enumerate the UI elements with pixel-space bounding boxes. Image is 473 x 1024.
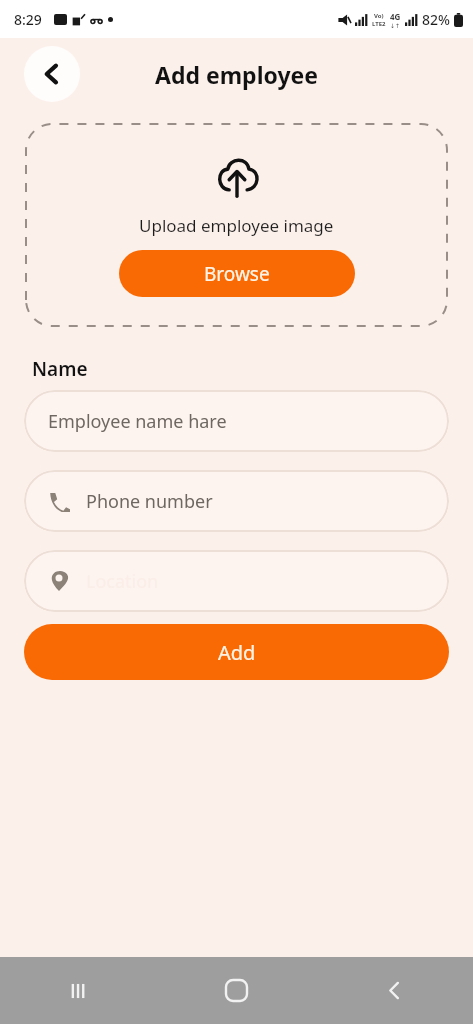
staticText: 82% bbox=[422, 10, 450, 29]
button[interactable]: Back bbox=[24, 46, 80, 102]
staticText: Employee name hare bbox=[48, 409, 227, 434]
staticText: LTE2 bbox=[372, 20, 386, 28]
staticText: 8:29 bbox=[14, 10, 42, 29]
button[interactable]: Location bbox=[24, 550, 449, 612]
staticText: Add employee bbox=[155, 59, 319, 90]
staticText: 4G bbox=[390, 11, 401, 22]
button[interactable]: Employee name hare bbox=[24, 390, 449, 452]
staticText: Add bbox=[218, 639, 256, 666]
button[interactable]: Phone number bbox=[24, 470, 449, 532]
staticText: ↓↑ bbox=[390, 22, 401, 29]
button[interactable]: Recent apps bbox=[0, 957, 157, 1024]
button[interactable]: Add bbox=[24, 624, 449, 680]
button[interactable]: Browse bbox=[119, 250, 355, 297]
button[interactable]: Home bbox=[157, 957, 315, 1024]
staticText: Phone number bbox=[86, 489, 213, 514]
staticText: Upload employee image bbox=[139, 214, 334, 237]
staticText: Vo) bbox=[374, 12, 384, 20]
staticText: Name bbox=[32, 356, 88, 382]
button[interactable]: Back bbox=[315, 957, 473, 1024]
staticText: Browse bbox=[204, 261, 270, 287]
